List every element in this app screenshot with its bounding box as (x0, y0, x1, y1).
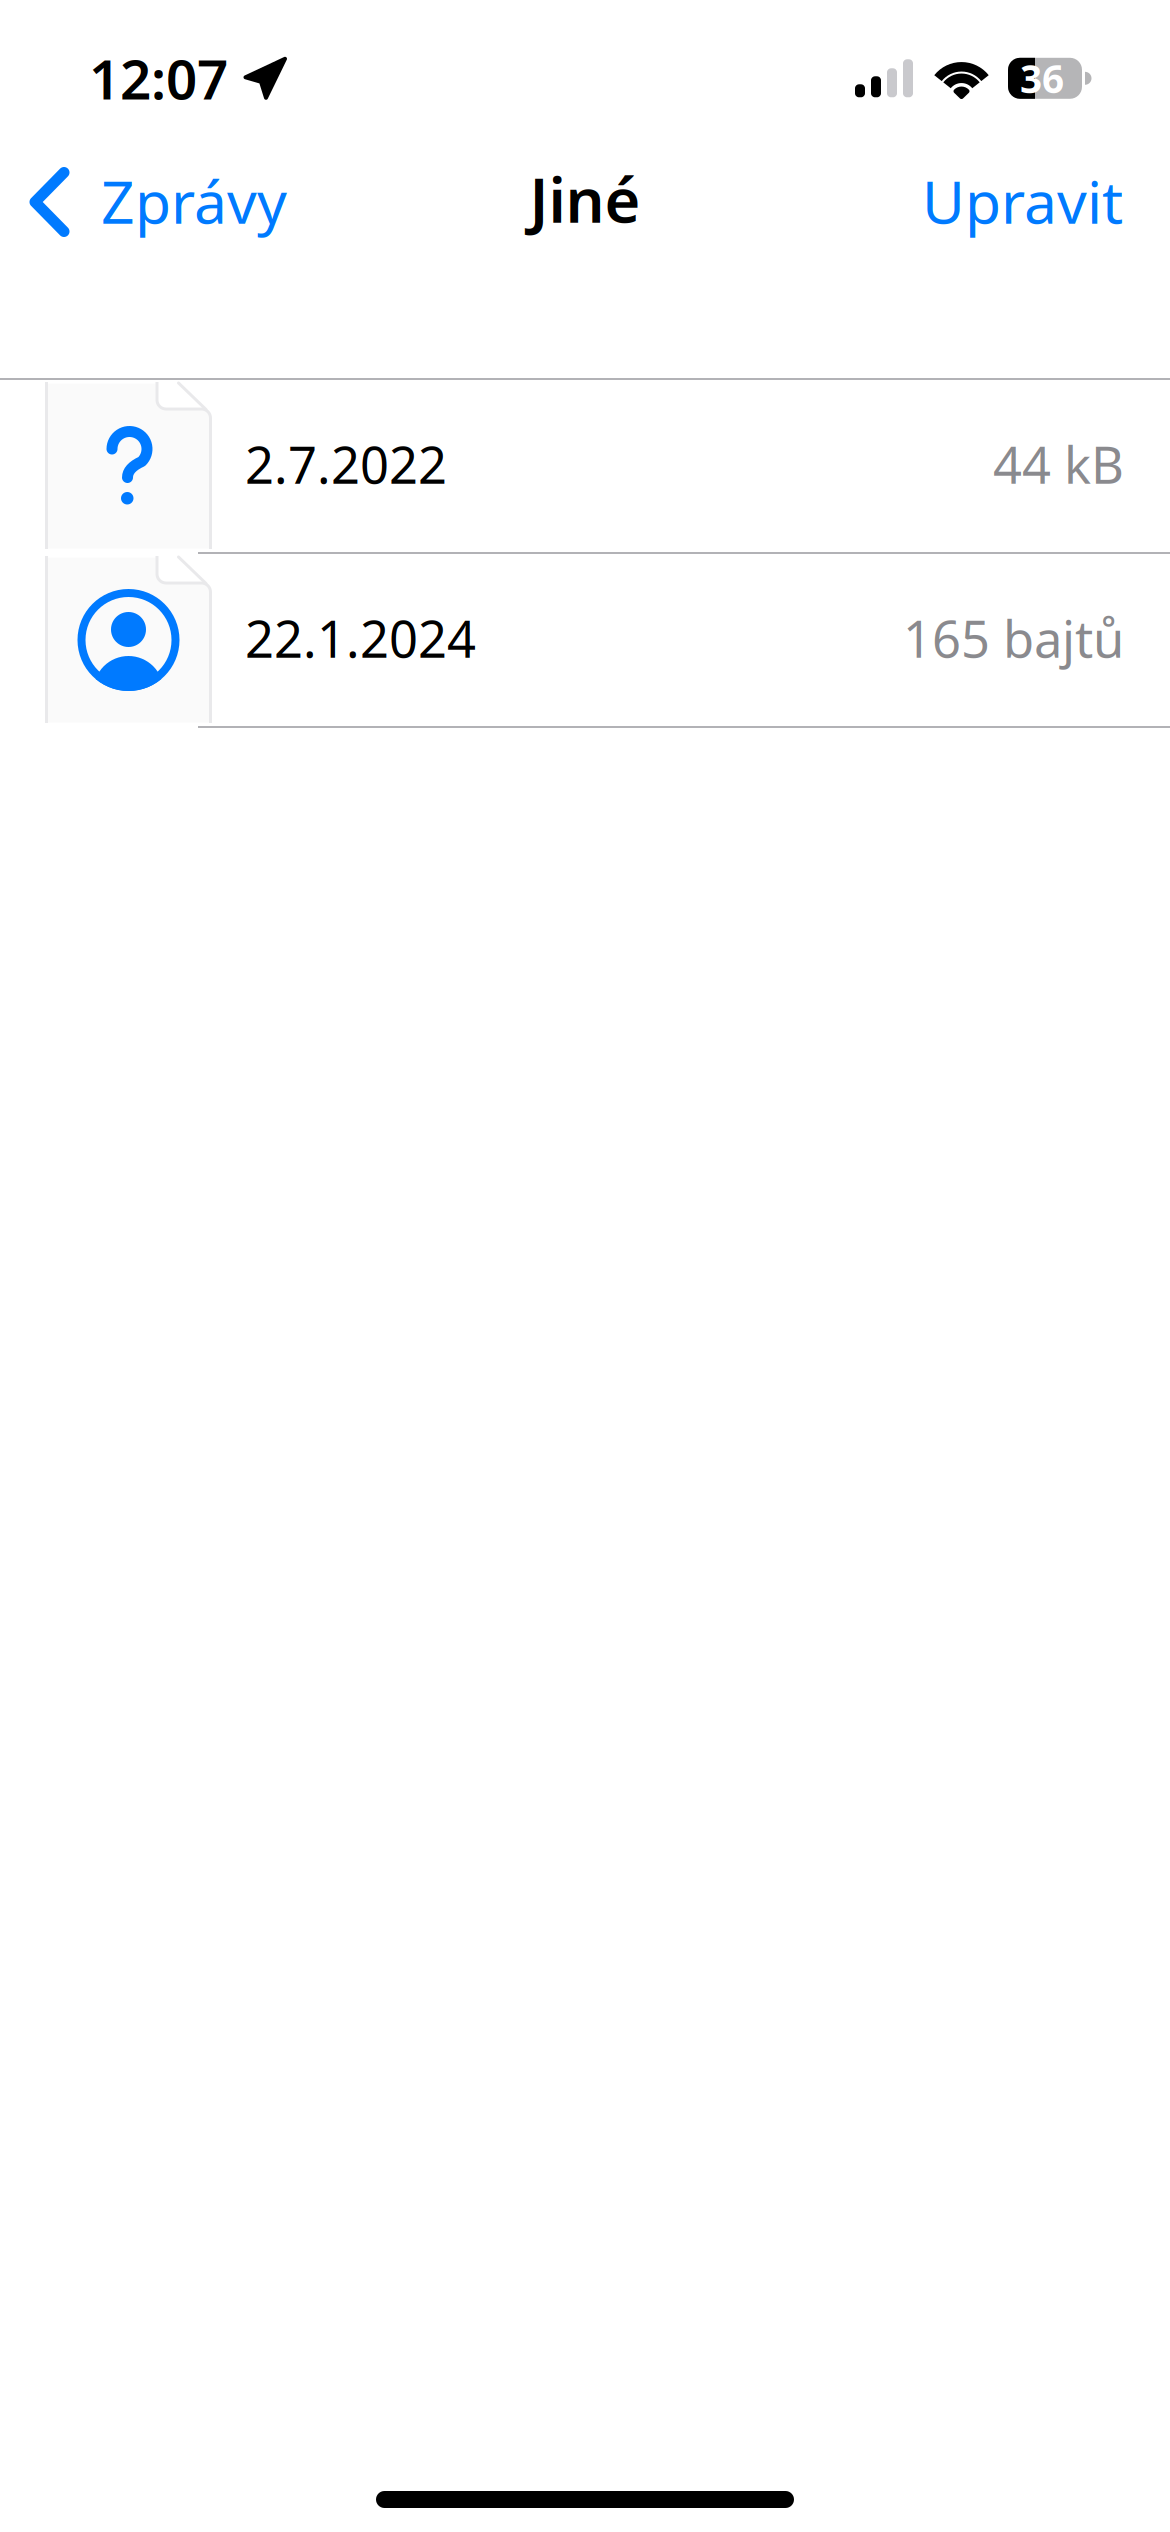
staticText: Zprávy (101, 162, 287, 240)
staticText: Jiné (529, 158, 640, 240)
staticText: 165 bajtů (903, 604, 1124, 672)
staticText: 12:07 (89, 42, 228, 115)
staticText: 36 (1020, 53, 1064, 104)
button[interactable]: 2.7.2022, 44 kB (0, 380, 1170, 552)
staticText: 22.1.2024 (245, 604, 476, 672)
button[interactable]: Zprávy (0, 145, 311, 259)
button[interactable]: Upravit (894, 145, 1170, 259)
staticText: 44 kB (993, 430, 1124, 498)
button[interactable]: 22.1.2024, 165 bajtů (0, 554, 1170, 726)
staticText: 2.7.2022 (245, 430, 447, 498)
staticText: Upravit (922, 162, 1123, 240)
